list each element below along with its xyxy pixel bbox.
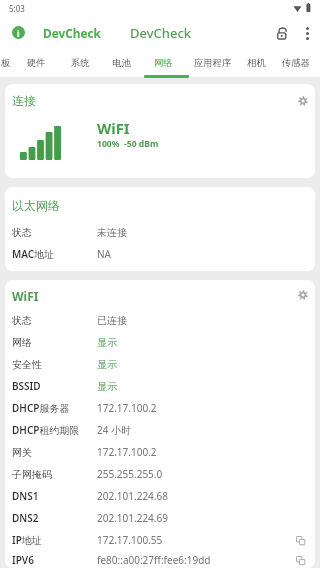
staticText: 状态 <box>12 314 32 327</box>
staticText: 255.255.255.0 <box>97 467 163 481</box>
staticText: 网关 <box>12 446 32 459</box>
staticText: 电池 <box>112 57 131 69</box>
staticText: 5:03 <box>9 3 25 14</box>
button[interactable]: More options <box>294 20 320 46</box>
staticText: 未连接 <box>97 226 127 239</box>
button[interactable]: IPV6 <box>5 551 315 568</box>
button[interactable]: 网络 <box>5 331 315 353</box>
staticText: DNS1 <box>12 489 39 503</box>
staticText: 传感器 <box>282 57 310 69</box>
button[interactable]: Copy <box>292 552 308 568</box>
staticText: 以太网络 <box>12 198 60 213</box>
staticText: 已连接 <box>97 314 127 327</box>
staticText: 硬件 <box>27 57 46 69</box>
button[interactable]: Settings <box>293 91 313 111</box>
staticText: DHCP服务器 <box>12 401 70 415</box>
button[interactable]: 安全性 <box>5 353 315 375</box>
staticText: 202.101.224.69 <box>97 511 168 525</box>
staticText: IPV6 <box>12 553 34 567</box>
staticText: NA <box>97 247 111 261</box>
button[interactable]: DHCP租约期限 <box>5 419 315 441</box>
staticText: 网络 <box>154 57 173 69</box>
staticText: BSSID <box>12 379 41 393</box>
staticText: IP地址 <box>12 533 42 547</box>
staticText: 安全性 <box>12 358 42 371</box>
staticText: i <box>17 27 20 39</box>
button[interactable]: IP地址 <box>5 529 315 551</box>
staticText: 显示 <box>97 380 117 393</box>
staticText: WiFI <box>97 118 130 138</box>
button[interactable]: 状态 <box>5 221 315 243</box>
button[interactable]: DNS1 <box>5 485 315 507</box>
staticText: 显示 <box>97 336 117 349</box>
staticText: DHCP租约期限 <box>12 423 80 437</box>
staticText: 172.17.100.2 <box>97 445 157 459</box>
staticText: WiFI <box>12 288 39 304</box>
staticText: DevCheck <box>130 24 192 42</box>
staticText: 连接 <box>12 93 36 108</box>
staticText: fe80::a00:27ff:fee6:19dd <box>97 553 211 567</box>
button[interactable]: 状态 <box>5 309 315 331</box>
staticText: 100% -50 dBm <box>97 138 159 150</box>
button[interactable]: 系统 <box>59 48 101 77</box>
button[interactable]: 传感器 <box>271 48 320 77</box>
button[interactable]: Copy <box>292 532 308 548</box>
button[interactable]: 电池 <box>100 48 142 77</box>
staticText: 相机 <box>247 57 266 69</box>
button[interactable]: 硬件 <box>15 48 57 77</box>
staticText: DevCheck <box>43 25 101 41</box>
staticText: 显示 <box>97 358 117 371</box>
button[interactable]: 网络 <box>141 48 186 77</box>
button[interactable]: DNS2 <box>5 507 315 529</box>
button[interactable]: MAC地址 <box>5 243 315 265</box>
button[interactable]: 网关 <box>5 441 315 463</box>
staticText: 板 <box>1 57 11 69</box>
staticText: 172.17.100.55 <box>97 533 163 547</box>
button[interactable]: 板 <box>0 48 16 77</box>
staticText: 系统 <box>71 57 90 69</box>
button[interactable]: DHCP服务器 <box>5 397 315 419</box>
button[interactable]: 子网掩码 <box>5 463 315 485</box>
button[interactable]: Unlock <box>269 20 295 46</box>
button[interactable]: BSSID <box>5 375 315 397</box>
staticText: 172.17.100.2 <box>97 401 157 415</box>
staticText: 网络 <box>12 336 32 349</box>
staticText: DNS2 <box>12 511 39 525</box>
button[interactable]: 相机 <box>235 48 277 77</box>
staticText: 202.101.224.68 <box>97 489 168 503</box>
button[interactable]: App info <box>12 26 25 39</box>
staticText: 子网掩码 <box>12 468 52 481</box>
button[interactable]: 应用程序 <box>185 48 240 77</box>
staticText: 24 小时 <box>97 423 132 437</box>
button[interactable]: WiFi settings <box>293 285 313 305</box>
staticText: 状态 <box>12 226 32 239</box>
staticText: MAC地址 <box>12 247 55 261</box>
staticText: 应用程序 <box>194 57 232 69</box>
